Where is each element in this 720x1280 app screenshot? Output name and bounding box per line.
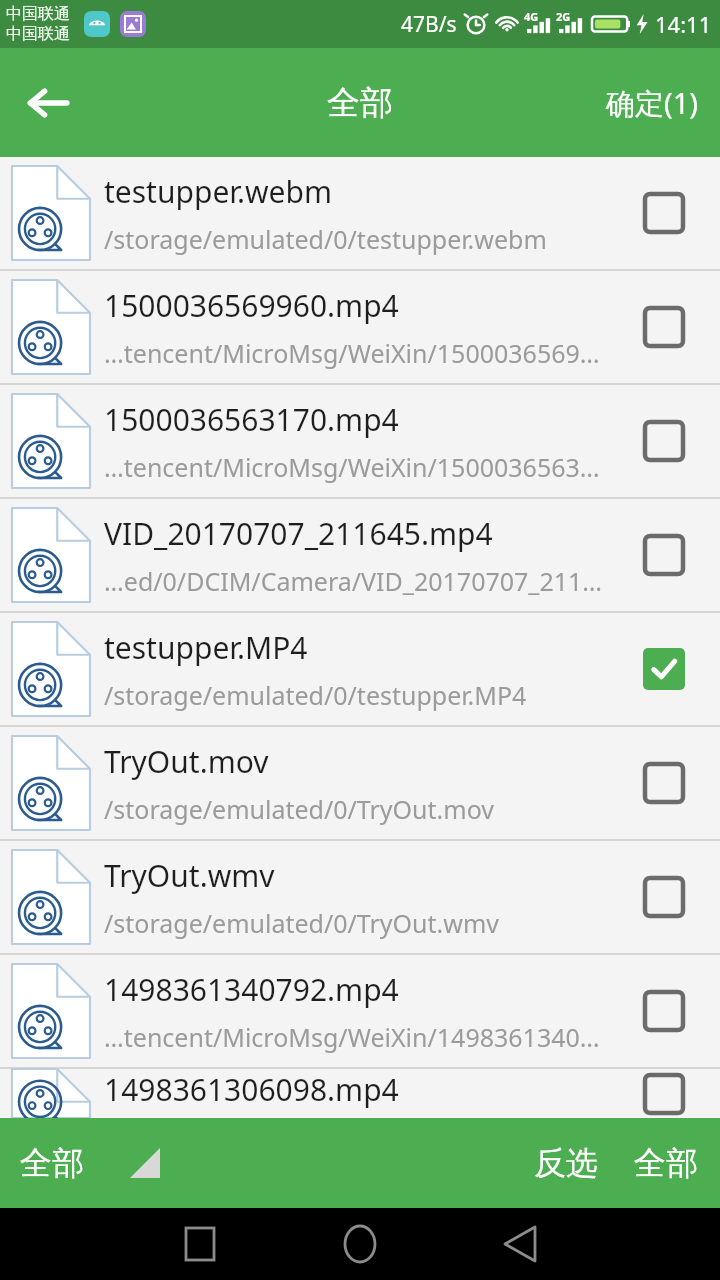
staticText: /storage/emulated/0/TryOut.wmv [104, 906, 500, 940]
staticText: 确定(1) [606, 83, 698, 123]
button[interactable]: 反选 [516, 1118, 616, 1208]
staticText: 全部 [634, 1143, 698, 1183]
staticText: …tencent/MicroMsg/WeiXin/1498361340792.m… [104, 1020, 612, 1054]
staticText: 全部 [20, 1143, 84, 1183]
staticText: 4G [524, 9, 539, 24]
staticText: /storage/emulated/0/testupper.webm [104, 222, 547, 256]
button[interactable]: 1498361306098.mp4 [0, 1069, 720, 1118]
staticText: 47B/s [401, 10, 457, 39]
staticText: 1500036563170.mp4 [104, 399, 399, 440]
staticText: VID_20170707_211645.mp4 [104, 513, 493, 554]
button[interactable]: 全部 [616, 1118, 720, 1208]
button[interactable]: VID_20170707_211645.mp4 [0, 499, 720, 611]
staticText: 中国联通 [6, 24, 70, 44]
button[interactable]: Home [328, 1212, 392, 1276]
staticText: 1498361306098.mp4 [104, 1069, 399, 1110]
staticText: /storage/emulated/0/TryOut.mov [104, 792, 494, 826]
staticText: 全部 [327, 82, 393, 124]
button[interactable]: Not selected [620, 1069, 708, 1118]
staticText: 1500036569960.mp4 [104, 285, 399, 326]
staticText: 中国联通 [6, 4, 70, 24]
button[interactable]: testupper.MP4 [0, 613, 720, 725]
button[interactable]: 确定(1) [584, 48, 720, 157]
staticText: 14:11 [655, 9, 712, 39]
button[interactable]: Not selected [620, 853, 708, 941]
staticText: testupper.webm [104, 171, 332, 212]
staticText: /storage/emulated/0/testupper.MP4 [104, 678, 527, 712]
button[interactable]: Back [0, 55, 96, 151]
staticText: TryOut.wmv [104, 855, 275, 896]
staticText: 2G [556, 9, 571, 24]
button[interactable]: Not selected [620, 283, 708, 371]
button[interactable]: Recents [168, 1212, 232, 1276]
button[interactable]: Not selected [620, 397, 708, 485]
button[interactable]: Not selected [620, 967, 708, 1055]
button[interactable]: TryOut.wmv [0, 841, 720, 953]
staticText: 反选 [534, 1143, 598, 1183]
button[interactable]: 全部 [0, 1118, 160, 1208]
staticText: TryOut.mov [104, 741, 269, 782]
staticText: …tencent/MicroMsg/WeiXin/1500036563170.m… [104, 450, 612, 484]
button[interactable]: Back [488, 1212, 552, 1276]
button[interactable]: 1500036569960.mp4 [0, 271, 720, 383]
button[interactable]: Not selected [620, 169, 708, 257]
staticText: testupper.MP4 [104, 627, 308, 668]
button[interactable]: Not selected [620, 739, 708, 827]
button[interactable]: 1498361340792.mp4 [0, 955, 720, 1067]
staticText: …tencent/MicroMsg/WeiXin/1500036569960.m… [104, 336, 612, 370]
button[interactable]: Not selected [620, 511, 708, 599]
button[interactable]: TryOut.mov [0, 727, 720, 839]
staticText: …ed/0/DCIM/Camera/VID_20170707_211645.mp… [104, 564, 612, 598]
button[interactable]: testupper.webm [0, 157, 720, 269]
button[interactable]: Selected [620, 625, 708, 713]
button[interactable]: 1500036563170.mp4 [0, 385, 720, 497]
staticText: 1498361340792.mp4 [104, 969, 399, 1010]
